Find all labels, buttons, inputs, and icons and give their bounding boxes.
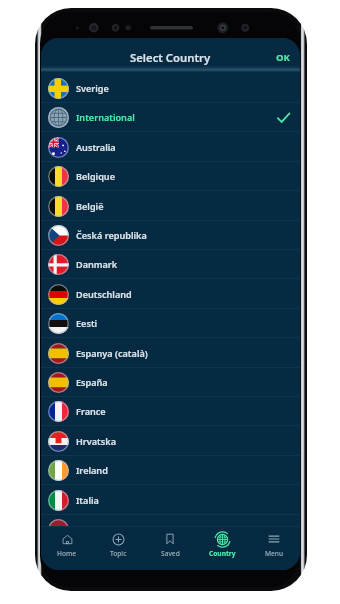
staticText: España (76, 376, 108, 388)
button[interactable]: Menu (248, 526, 300, 570)
staticText: Ireland (76, 464, 108, 476)
staticText: Latvija (76, 523, 106, 535)
staticText: Eesti (76, 317, 98, 329)
staticText: Deutschland (76, 288, 132, 300)
button[interactable]: Danmark (41, 250, 300, 279)
button[interactable]: Home (41, 526, 92, 570)
button[interactable]: Saved (144, 526, 196, 570)
button[interactable]: Eesti (41, 309, 300, 338)
staticText: Italia (76, 494, 99, 506)
staticText: Home (57, 549, 76, 558)
button[interactable]: France (41, 397, 300, 426)
staticText: International (76, 111, 135, 123)
staticText: Country (209, 549, 236, 558)
button[interactable]: International (41, 103, 300, 132)
staticText: Menu (265, 549, 284, 558)
button[interactable]: Hrvatska (41, 427, 300, 456)
staticText: Select Country (130, 50, 211, 65)
button[interactable]: Deutschland (41, 280, 300, 309)
button[interactable]: Australia (41, 133, 300, 162)
button[interactable]: Sverige (41, 74, 300, 103)
button[interactable]: Ireland (41, 456, 300, 485)
button[interactable]: Česká republika (41, 221, 300, 250)
staticText: OK (276, 51, 290, 64)
staticText: Sverige (76, 82, 109, 94)
button[interactable]: Topic (92, 526, 144, 570)
staticText: België (76, 200, 104, 212)
staticText: Danmark (76, 258, 118, 270)
button[interactable]: Espanya (català) (41, 339, 300, 368)
button[interactable]: OK (266, 38, 300, 69)
button[interactable]: Country (196, 526, 248, 570)
staticText: Espanya (català) (76, 347, 148, 359)
button[interactable]: Belgique (41, 162, 300, 191)
staticText: Belgique (76, 170, 115, 182)
staticText: Australia (76, 141, 116, 153)
staticText: Saved (161, 549, 180, 558)
button[interactable]: Italia (41, 486, 300, 515)
button[interactable]: España (41, 368, 300, 397)
button[interactable]: Latvija (41, 515, 300, 544)
staticText: France (76, 405, 106, 417)
staticText: Česká republika (76, 229, 147, 241)
button[interactable]: België (41, 192, 300, 221)
staticText: Hrvatska (76, 435, 116, 447)
staticText: Topic (110, 549, 127, 558)
